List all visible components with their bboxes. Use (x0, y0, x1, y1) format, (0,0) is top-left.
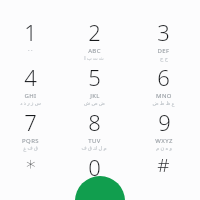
button[interactable]: ∗ (0, 152, 61, 196)
staticText: 5 (88, 62, 101, 92)
staticText: ∗ (25, 152, 37, 174)
staticText: 4 (24, 62, 37, 92)
staticText: 2 (88, 17, 101, 47)
staticText: ح ج (160, 55, 168, 62)
staticText: ABC (88, 47, 101, 55)
button[interactable]: Call (75, 176, 125, 200)
staticText: MNO (156, 92, 172, 100)
button[interactable]: 7 (0, 107, 61, 152)
button[interactable]: 4 (0, 62, 61, 107)
button[interactable]: # (127, 152, 200, 196)
staticText: 7 (24, 107, 37, 137)
staticText: 3 (157, 17, 170, 47)
button[interactable]: 5 (61, 62, 127, 107)
staticText: DEF (157, 47, 170, 55)
staticText: # (157, 152, 170, 178)
button[interactable]: 9 (127, 107, 200, 152)
staticText: 9 (158, 107, 171, 137)
staticText: GHI (24, 92, 37, 100)
button[interactable]: 0 (61, 152, 127, 196)
staticText: ض ص ش (84, 100, 105, 107)
button[interactable]: 6 (127, 62, 200, 107)
staticText: TUV (88, 137, 101, 145)
staticText: 6 (157, 62, 170, 92)
staticText: 8 (88, 107, 101, 137)
staticText: JKL (90, 92, 100, 100)
staticText: ٠٠ (27, 47, 34, 53)
staticText: س ز ر ذ د (20, 100, 41, 107)
button[interactable]: 3 (127, 17, 200, 62)
staticText: 0 (88, 152, 101, 182)
button[interactable]: 2 (61, 17, 127, 62)
staticText: ع ظ ط ض (152, 100, 175, 107)
button[interactable]: 1 (0, 17, 61, 62)
staticText: م ل ك ق ف (81, 145, 107, 152)
staticText: 1 (24, 17, 37, 47)
staticText: ق ف غ (23, 145, 38, 152)
staticText: PQRS (22, 137, 39, 145)
staticText: ث ت ب ا (84, 55, 104, 62)
staticText: و ه ن م (156, 145, 172, 152)
staticText: WXYZ (155, 137, 173, 145)
button[interactable]: 8 (61, 107, 127, 152)
